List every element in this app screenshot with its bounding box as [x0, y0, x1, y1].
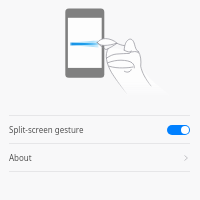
other: About [182, 154, 190, 162]
button[interactable]: About [0, 144, 200, 171]
staticText: Split-screen gesture [9, 124, 84, 135]
staticText: About [9, 152, 32, 163]
button[interactable]: Split-screen gesture [0, 116, 200, 143]
